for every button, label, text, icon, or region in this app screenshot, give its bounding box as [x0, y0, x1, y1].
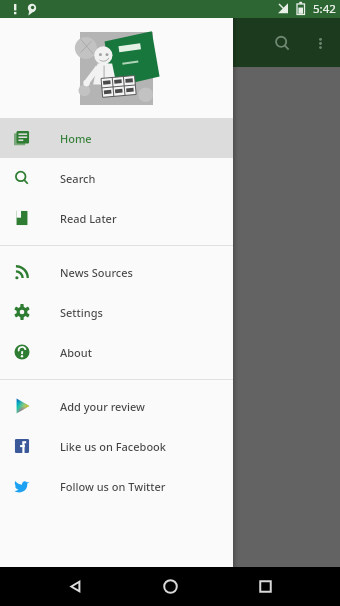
button[interactable]: Settings: [0, 292, 233, 332]
button[interactable]: Follow us on Twitter: [0, 466, 233, 506]
button[interactable]: Like us on Facebook: [0, 426, 233, 466]
staticText: Like us on Facebook: [60, 439, 166, 454]
staticText: Add your review: [60, 399, 145, 414]
button[interactable]: Search: [262, 23, 302, 63]
button[interactable]: More options: [302, 25, 338, 61]
button[interactable]: Home: [0, 118, 233, 158]
button[interactable]: Add your review: [0, 386, 233, 426]
staticText: Read Later: [60, 211, 117, 226]
staticText: Settings: [60, 305, 103, 320]
button[interactable]: About: [0, 332, 233, 372]
button[interactable]: News Sources: [0, 252, 233, 292]
staticText: Follow us on Twitter: [60, 479, 166, 494]
staticText: About: [60, 345, 92, 360]
staticText: News Sources: [60, 265, 133, 280]
staticText: 5:42: [313, 1, 336, 17]
button[interactable]: Home: [150, 567, 190, 606]
button[interactable]: Read Later: [0, 198, 233, 238]
button[interactable]: App logo: [0, 18, 233, 118]
staticText: Home: [60, 131, 92, 146]
button[interactable]: Recent apps: [245, 567, 285, 606]
button[interactable]: Search: [0, 158, 233, 198]
staticText: Search: [60, 171, 96, 186]
button[interactable]: Back: [55, 567, 95, 606]
